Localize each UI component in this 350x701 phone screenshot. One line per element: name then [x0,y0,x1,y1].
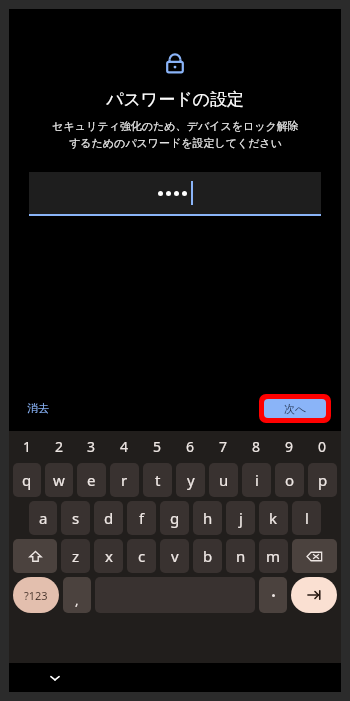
button[interactable]: m [259,539,288,573]
staticText: セキュリティ強化のため、デバイスをロック解除 するためのパスワードを設定してくだ… [52,119,299,150]
staticText: z [72,546,80,566]
staticText: v [171,546,179,566]
button[interactable]: h [193,501,222,535]
button[interactable]: l [292,501,321,535]
button[interactable]: p [308,463,337,497]
staticText: 1 [23,437,32,456]
staticText: 4 [120,437,129,456]
button[interactable]: 消去 [9,393,67,423]
staticText: 3 [87,437,96,456]
button[interactable]: 7 [207,431,240,461]
button[interactable]: q [13,463,41,497]
button[interactable]: z [61,539,90,573]
button[interactable]: v [160,539,189,573]
button[interactable]: 5 [141,431,174,461]
staticText: 9 [285,437,294,456]
button[interactable] [259,577,287,613]
button[interactable]: 0 [306,431,339,461]
button[interactable]: j [226,501,255,535]
staticText: c [138,546,146,566]
button[interactable]: o [275,463,304,497]
button[interactable]: Enter [291,577,337,613]
button[interactable]: 1 [11,431,43,461]
staticText: 6 [186,437,195,456]
staticText: q [22,470,32,490]
staticText: 8 [252,437,261,456]
staticText: l [305,508,309,528]
button[interactable]: s [61,501,90,535]
staticText: d [104,508,114,528]
staticText: a [39,508,48,528]
button[interactable]: Backspace [292,539,337,573]
staticText: b [203,546,213,566]
staticText: n [236,546,246,566]
button[interactable]: 6 [174,431,207,461]
button[interactable]: f [127,501,156,535]
staticText: h [203,508,213,528]
staticText: j [239,508,243,528]
button[interactable]: 4 [108,431,141,461]
staticText: 消去 [27,401,49,415]
staticText: e [87,470,96,490]
button[interactable]: u [209,463,238,497]
staticText: t [155,470,161,490]
button[interactable]: c [127,539,156,573]
button[interactable]: n [226,539,255,573]
staticText: m [266,546,281,566]
staticText: f [139,508,145,528]
staticText: ?123 [24,588,48,603]
button[interactable]: ?123 [13,577,59,613]
button[interactable]: 8 [240,431,273,461]
staticText: x [105,546,113,566]
button[interactable]: i [242,463,271,497]
button[interactable]: w [45,463,73,497]
staticText: 0 [318,437,327,456]
staticText: g [170,508,180,528]
button[interactable]: 次へ [264,399,326,418]
button[interactable]: g [160,501,189,535]
button[interactable]: 3 [75,431,108,461]
staticText: 2 [55,437,64,456]
staticText: o [285,470,295,490]
button[interactable]: d [94,501,123,535]
staticText: 次へ [284,402,307,416]
button[interactable]: y [176,463,205,497]
staticText: k [269,508,278,528]
button[interactable]: k [259,501,288,535]
button[interactable]: Hide keyboard [43,666,67,690]
button[interactable]: a [29,501,57,535]
button[interactable]: x [94,539,123,573]
button[interactable]: r [110,463,139,497]
button[interactable]: 2 [43,431,75,461]
button[interactable] [29,172,321,216]
staticText: , [75,591,79,609]
button[interactable]: b [193,539,222,573]
button[interactable]: t [143,463,172,497]
staticText: y [187,470,195,490]
button[interactable]: 9 [273,431,306,461]
button[interactable]: e [77,463,106,497]
staticText: 5 [153,437,162,456]
button[interactable]: , [63,577,91,613]
staticText: w [53,470,65,490]
staticText: i [255,470,259,490]
staticText: s [72,508,80,528]
staticText: r [121,470,128,490]
staticText: p [318,470,328,490]
staticText: u [219,470,229,490]
staticText: パスワードの設定 [106,89,244,110]
button[interactable]: Shift [13,539,57,573]
staticText: 7 [219,437,228,456]
